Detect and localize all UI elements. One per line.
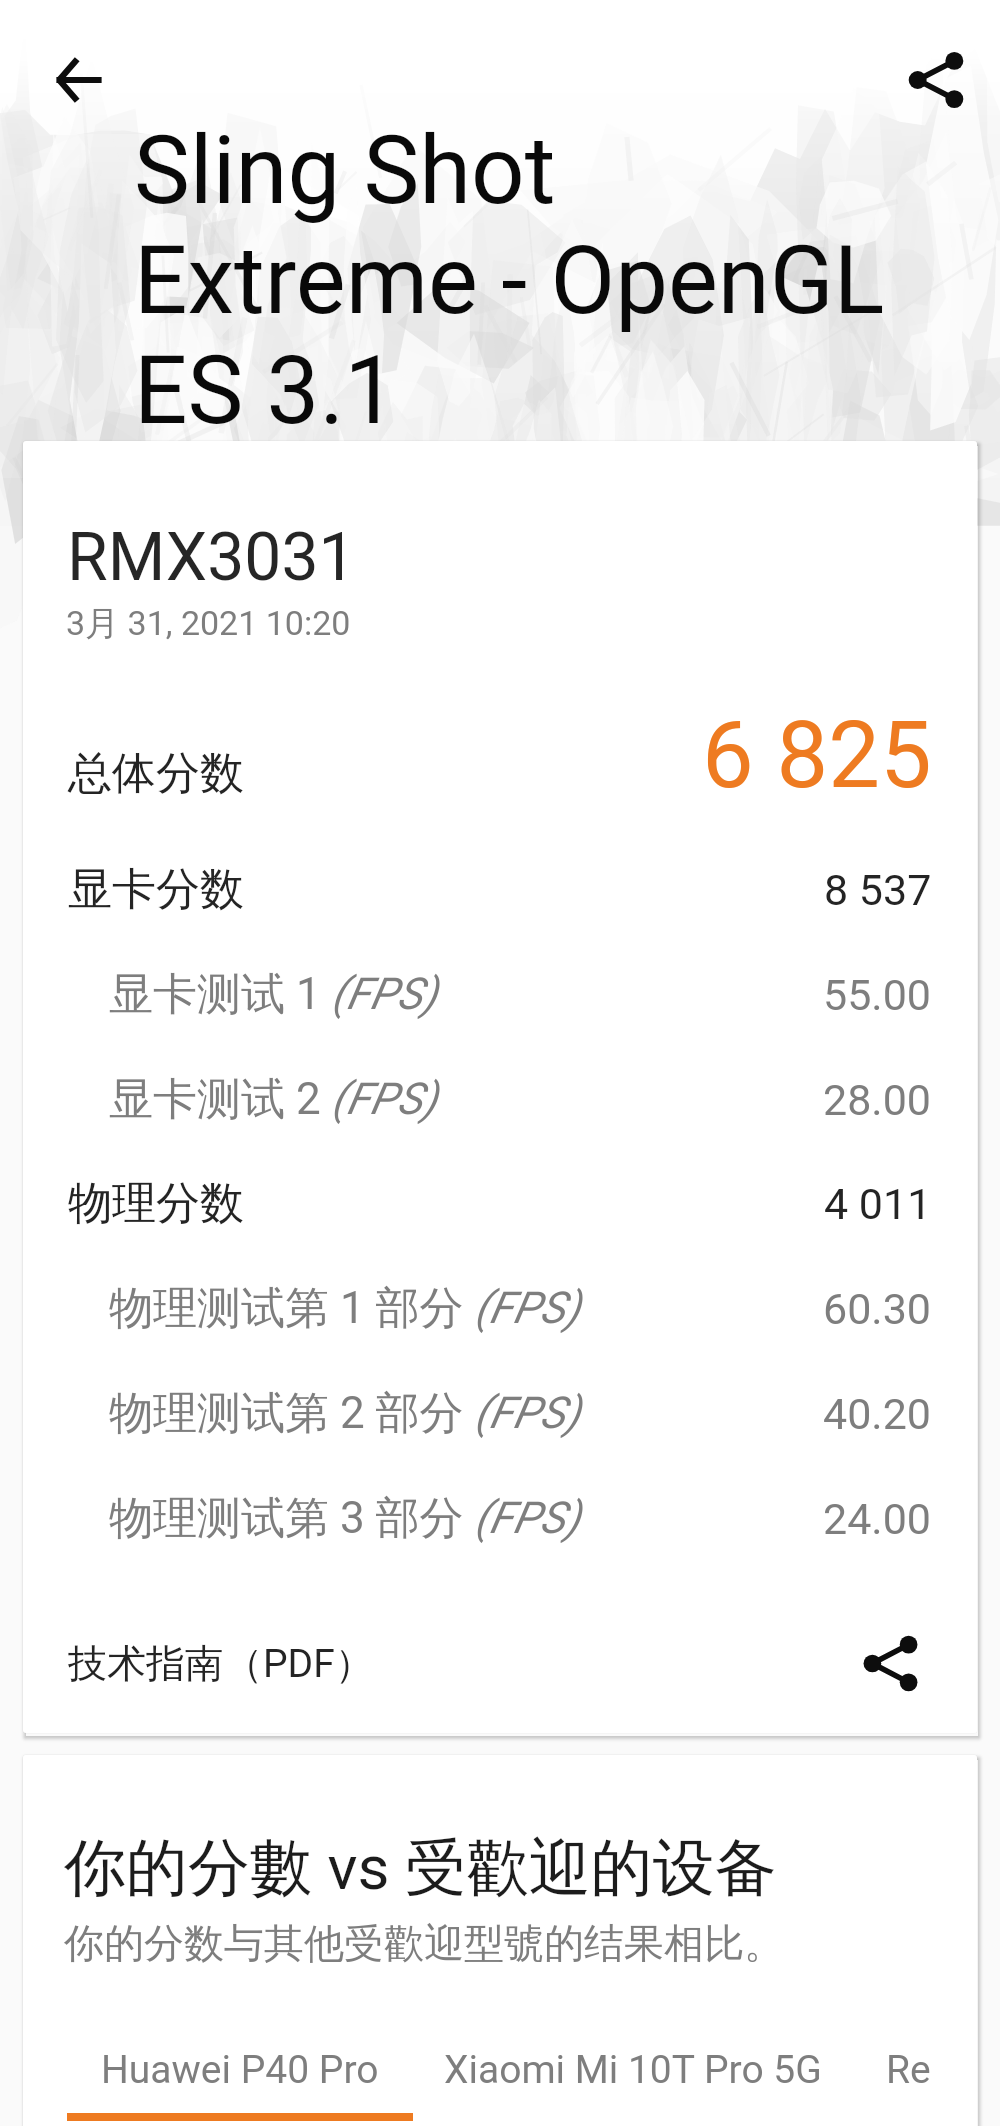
- button[interactable]: Share technical guide PDF: [852, 1625, 929, 1702]
- button[interactable]: 显卡分数: [23, 837, 977, 942]
- button[interactable]: 总体分数: [23, 715, 977, 831]
- staticText: 40.20: [823, 1389, 932, 1439]
- staticText: 总体分数: [68, 746, 244, 801]
- button[interactable]: 显卡测试 1 (FPS): [23, 942, 977, 1047]
- button[interactable]: 物理测试第 2 部分 (FPS): [23, 1361, 977, 1466]
- staticText: Huawei P40 Pro: [101, 2047, 379, 2093]
- staticText: 你的分数与其他受歡迎型號的结果相比。: [64, 1918, 784, 1968]
- staticText: 物理测试第 1 部分 (FPS): [109, 1281, 580, 1336]
- button[interactable]: Re: [853, 2030, 977, 2110]
- staticText: 物理分数: [68, 1176, 244, 1231]
- staticText: 技术指南（PDF）: [68, 1639, 374, 1688]
- button[interactable]: 物理分数: [23, 1151, 977, 1256]
- staticText: 60.30: [823, 1284, 932, 1334]
- button[interactable]: Huawei P40 Pro: [67, 2030, 413, 2110]
- staticText: 显卡测试 1 (FPS): [109, 967, 437, 1022]
- staticText: 你的分數 vs 受歡迎的设备: [64, 1829, 777, 1907]
- staticText: Sling Shot Extreme - OpenGL ES 3.1: [134, 116, 885, 446]
- staticText: Xiaomi Mi 10T Pro 5G: [444, 2047, 822, 2093]
- staticText: 28.00: [823, 1075, 932, 1125]
- button[interactable]: 物理测试第 3 部分 (FPS): [23, 1466, 977, 1571]
- staticText: 物理测试第 3 部分 (FPS): [109, 1491, 580, 1546]
- button[interactable]: 物理测试第 1 部分 (FPS): [23, 1256, 977, 1361]
- staticText: 55.00: [823, 970, 932, 1020]
- staticText: 24.00: [823, 1494, 932, 1544]
- button[interactable]: 显卡测试 2 (FPS): [23, 1047, 977, 1152]
- staticText: 6 825: [702, 702, 932, 810]
- button[interactable]: 技术指南（PDF）: [23, 1611, 977, 1715]
- staticText: 8 537: [824, 865, 932, 915]
- staticText: 显卡分数: [68, 862, 244, 917]
- button[interactable]: Back: [40, 41, 118, 119]
- staticText: 3月 31, 2021 10:20: [66, 602, 351, 645]
- staticText: Re: [886, 2047, 931, 2093]
- staticText: 显卡测试 2 (FPS): [109, 1072, 437, 1127]
- button[interactable]: Share: [897, 41, 975, 119]
- button[interactable]: Xiaomi Mi 10T Pro 5G: [413, 2030, 853, 2110]
- staticText: 4 011: [824, 1179, 932, 1229]
- staticText: RMX3031: [67, 519, 356, 596]
- staticText: 物理测试第 2 部分 (FPS): [109, 1386, 580, 1441]
